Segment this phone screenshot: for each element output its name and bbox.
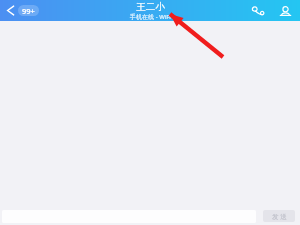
button[interactable]: Call <box>247 1 267 21</box>
button[interactable]: 发 送 <box>263 210 295 222</box>
button[interactable]: Back, 99+ unread <box>4 3 41 18</box>
staticText: 手机在线 - WiFi <box>130 13 171 21</box>
staticText: 发 送 <box>272 212 287 221</box>
staticText: 99+ <box>22 6 35 16</box>
button[interactable]: Contact profile <box>275 1 295 21</box>
staticText: 王二小 <box>136 1 165 13</box>
